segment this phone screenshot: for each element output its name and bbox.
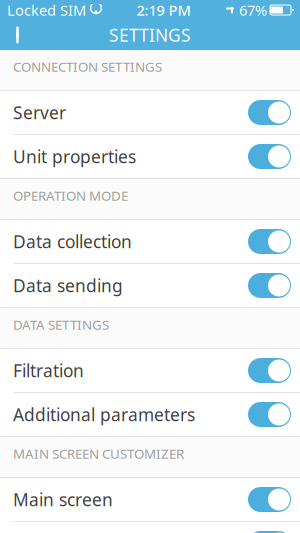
staticText: Additional parameters bbox=[13, 403, 195, 426]
staticText: Filtration bbox=[13, 359, 84, 382]
staticText: Main screen bbox=[13, 488, 113, 511]
button[interactable]: Server bbox=[0, 91, 300, 134]
staticText: 67% bbox=[235, 0, 267, 20]
staticText: Unit properties bbox=[13, 145, 136, 168]
button[interactable]: Filtration bbox=[0, 349, 300, 392]
button[interactable]: Data sending bbox=[0, 264, 300, 307]
button[interactable]: Back bbox=[0, 20, 38, 50]
staticText: Data sending bbox=[13, 274, 123, 297]
staticText: Server bbox=[13, 101, 66, 124]
button[interactable]: Widgets bbox=[0, 522, 300, 533]
staticText: DATA SETTINGS bbox=[13, 316, 109, 333]
button[interactable]: Additional parameters bbox=[0, 393, 300, 436]
staticText: Locked SIM bbox=[7, 0, 86, 20]
staticText: 2:19 PM bbox=[136, 0, 190, 20]
staticText: Data collection bbox=[13, 230, 132, 253]
button[interactable]: Data collection bbox=[0, 220, 300, 263]
staticText: MAIN SCREEN CUSTOMIZER bbox=[13, 445, 184, 462]
button[interactable]: Main screen bbox=[0, 478, 300, 521]
staticText: OPERATION MODE bbox=[13, 187, 128, 204]
staticText: CONNECTION SETTINGS bbox=[13, 58, 162, 75]
staticText: SETTINGS bbox=[109, 23, 191, 46]
button[interactable]: Unit properties bbox=[0, 135, 300, 178]
